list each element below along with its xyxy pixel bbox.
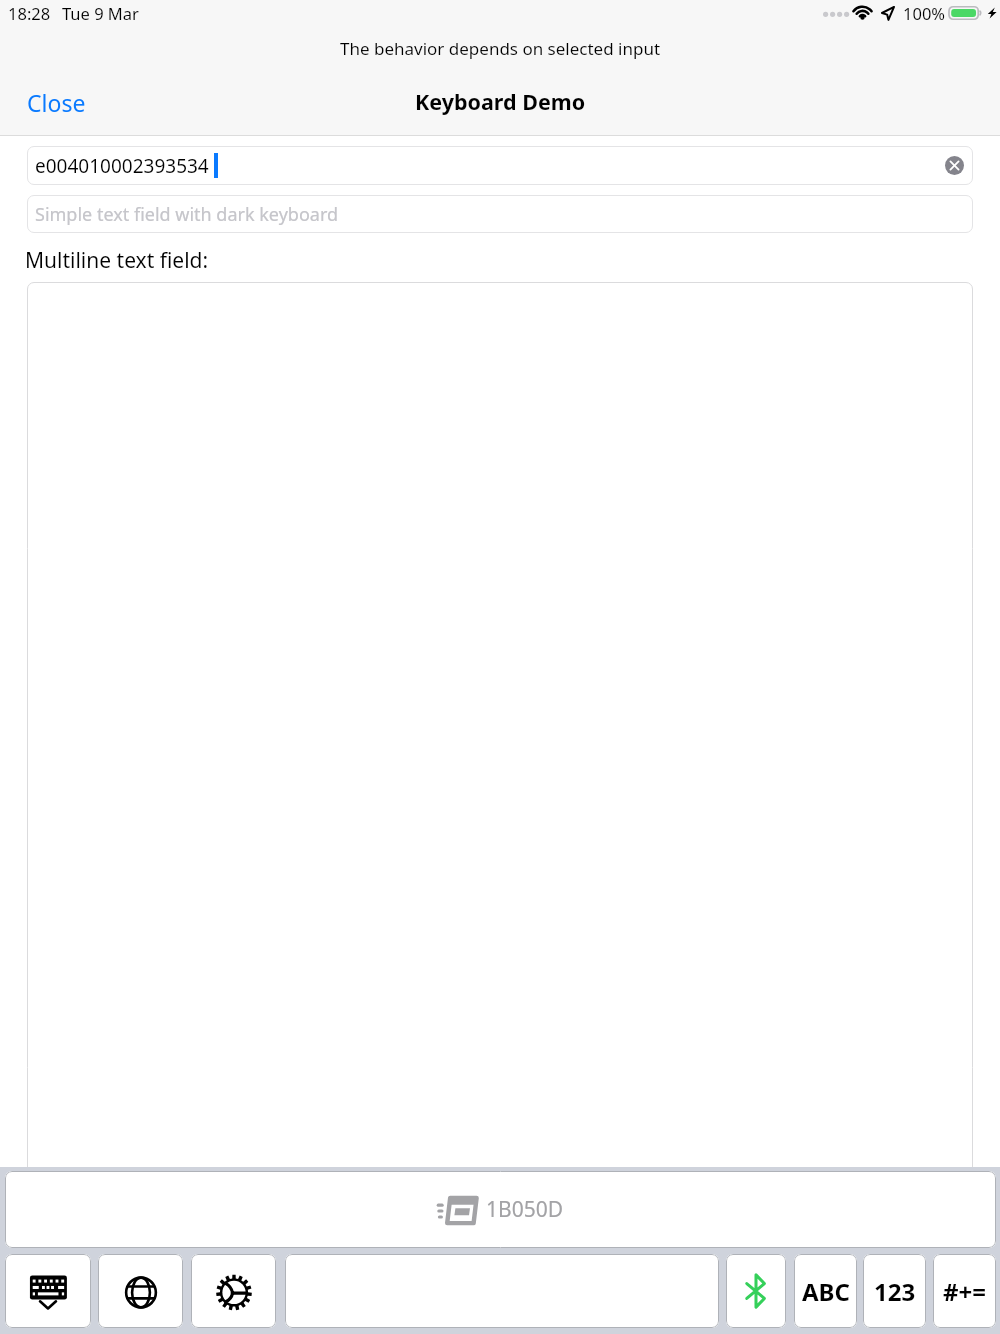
staticText: Keyboard Demo	[415, 87, 586, 116]
button[interactable]: Settings	[191, 1254, 276, 1328]
button[interactable]: Close	[13, 77, 100, 128]
button[interactable]	[27, 282, 973, 1334]
button[interactable]: Space	[285, 1254, 719, 1328]
staticText: Tue 9 Mar	[62, 2, 139, 24]
staticText: e004010002393534	[35, 153, 209, 179]
button[interactable]: 123	[863, 1254, 926, 1328]
staticText: ABC	[802, 1275, 850, 1308]
button[interactable]: ABC	[794, 1254, 857, 1328]
button[interactable]: #+=	[933, 1254, 996, 1328]
button[interactable]: Bluetooth	[726, 1254, 786, 1328]
button[interactable]: Change language	[98, 1254, 183, 1328]
staticText: 18:28	[8, 2, 51, 24]
staticText: Simple text field with dark keyboard	[35, 202, 339, 227]
staticText: Multiline text field:	[25, 246, 209, 275]
button[interactable]: 1B050D	[5, 1171, 996, 1248]
button[interactable]: Clear text	[945, 156, 964, 175]
staticText: 100%	[903, 2, 946, 24]
staticText: #+=	[943, 1275, 986, 1308]
staticText: 123	[874, 1275, 916, 1308]
staticText: The behavior depends on selected input	[340, 37, 661, 60]
staticText: 1B050D	[486, 1195, 564, 1224]
staticText: Close	[27, 87, 86, 118]
button[interactable]: e004010002393534	[27, 146, 973, 185]
button[interactable]: Hide keyboard	[5, 1254, 91, 1328]
button[interactable]: Simple text field with dark keyboard	[27, 195, 973, 233]
